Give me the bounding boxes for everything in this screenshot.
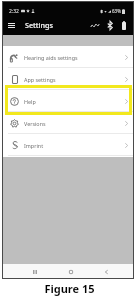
staticText: Versions [24,120,46,127]
staticText: 2:32 [9,8,19,15]
button[interactable]: Sound program [88,18,102,32]
staticText: Help [24,98,36,105]
staticText: Hearing aids settings [24,54,78,61]
staticText: 63% [112,8,121,14]
button[interactable]: Imprint [2,134,134,156]
button[interactable]: Hearing aids settings [2,46,134,68]
button[interactable]: Back [99,264,114,279]
button[interactable]: Versions [2,112,134,134]
button[interactable]: Battery status [118,19,130,31]
button[interactable]: Help [2,90,134,112]
button[interactable]: Open navigation menu [5,19,17,31]
staticText: Figure 15 [44,281,95,296]
button[interactable]: Bluetooth [103,18,117,32]
button[interactable]: Home [63,264,78,279]
staticText: App settings [24,76,56,83]
button[interactable]: App settings [2,68,134,90]
staticText: Imprint [24,142,44,149]
staticText: Settings [25,20,53,30]
button[interactable]: Recent apps [27,264,42,279]
